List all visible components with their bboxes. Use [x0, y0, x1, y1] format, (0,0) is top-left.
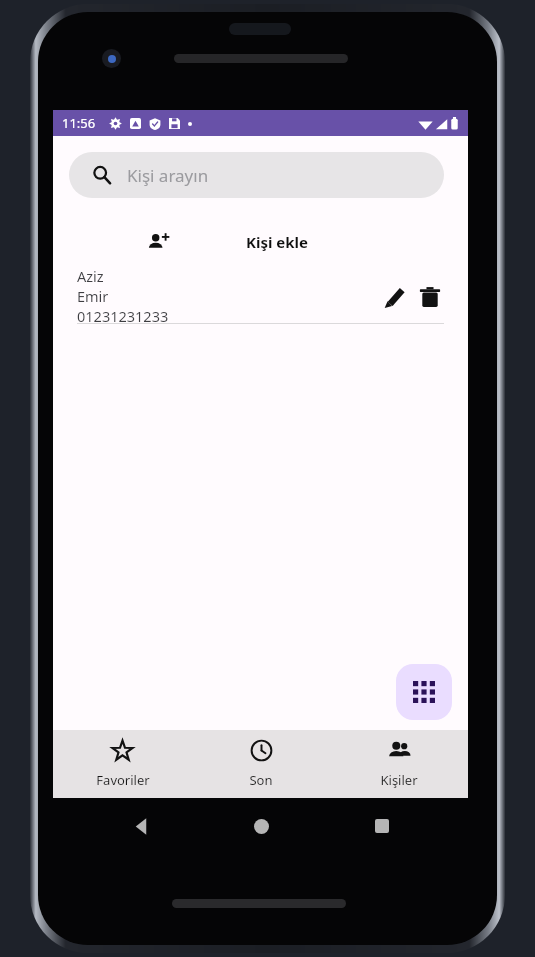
staticText: 01231231233	[77, 306, 169, 326]
staticText: Kişi ekle	[246, 232, 309, 252]
button[interactable]: Geri	[123, 808, 159, 844]
button[interactable]: Favoriler	[53, 730, 192, 798]
staticText: 11:56	[62, 114, 96, 132]
button[interactable]: Son uygulamalar	[364, 808, 400, 844]
button[interactable]: Kişi arayın	[69, 152, 444, 198]
button[interactable]: Tuş takımı	[396, 664, 452, 720]
button[interactable]: Sil	[414, 281, 446, 313]
staticText: Aziz	[77, 266, 104, 286]
button[interactable]: Aziz	[53, 264, 468, 324]
button[interactable]: Son	[192, 730, 330, 798]
button[interactable]: Ana sayfa	[243, 808, 279, 844]
button[interactable]: Kişi ekle	[53, 222, 468, 262]
staticText: Son	[249, 771, 273, 789]
button[interactable]: Kişiler	[330, 730, 468, 798]
staticText: Favoriler	[96, 771, 150, 789]
staticText: Kişiler	[380, 771, 418, 789]
button[interactable]: Düzenle	[379, 281, 411, 313]
staticText: Emir	[77, 286, 109, 306]
staticText: Kişi arayın	[127, 164, 209, 187]
